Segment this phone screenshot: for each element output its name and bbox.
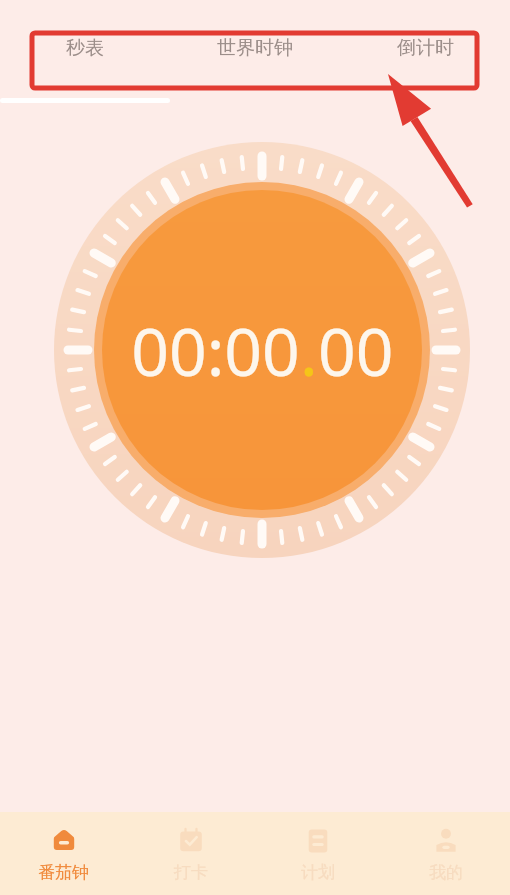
staticText: 番茄钟	[38, 862, 89, 883]
staticText: 我的	[429, 862, 463, 883]
staticText: 计划	[301, 862, 335, 883]
button[interactable]: 打卡	[127, 812, 254, 895]
staticText: .	[300, 305, 318, 395]
staticText: 00:00	[131, 305, 300, 395]
button[interactable]: 我的	[382, 812, 510, 895]
button[interactable]: 倒计时	[340, 0, 510, 96]
button[interactable]: Stopwatch dial	[54, 142, 470, 558]
staticText: 打卡	[174, 862, 208, 883]
button[interactable]: 秒表	[0, 0, 170, 96]
staticText: 00	[318, 305, 394, 395]
button[interactable]: 番茄钟	[0, 812, 127, 895]
staticText: 倒计时	[397, 36, 454, 60]
staticText: 秒表	[66, 36, 104, 60]
button[interactable]: 世界时钟	[170, 0, 340, 96]
staticText: 世界时钟	[217, 36, 293, 60]
button[interactable]: 计划	[254, 812, 382, 895]
